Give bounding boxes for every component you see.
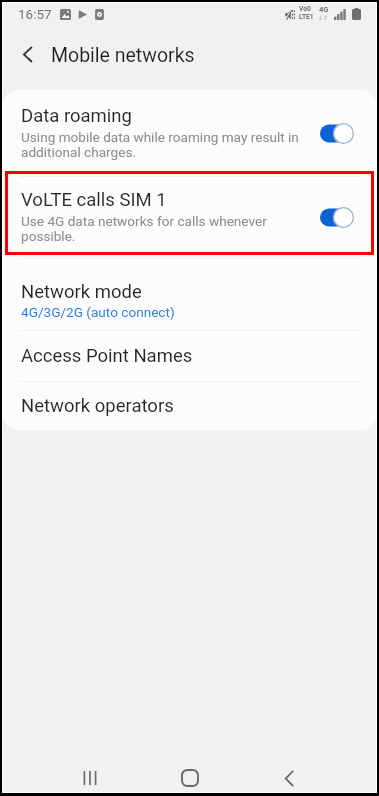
staticText: ↓↑ [318, 14, 329, 21]
staticText: Data roaming [21, 105, 132, 127]
staticText: 16:57 [18, 6, 52, 22]
button[interactable]: Toggle [320, 123, 354, 144]
staticText: Mobile networks [51, 44, 195, 67]
staticText: 4G/3G/2G (auto connect) [21, 304, 175, 320]
button[interactable]: Data roaming [3, 90, 376, 176]
button[interactable]: Access Point Names [3, 331, 376, 381]
button[interactable]: Home [3, 761, 376, 795]
staticText: Using mobile data while roaming may resu… [21, 129, 300, 160]
button[interactable]: VoLTE calls SIM 1 [3, 177, 376, 258]
staticText: LTE1 [299, 13, 314, 21]
button[interactable]: Back [259, 761, 319, 795]
button[interactable]: Network mode [3, 259, 376, 330]
staticText: Network operators [21, 395, 174, 417]
staticText: Vo0 [299, 5, 311, 13]
staticText: 4G [319, 5, 329, 14]
button[interactable]: Toggle [320, 207, 354, 228]
button[interactable]: Network operators [3, 382, 376, 430]
button[interactable]: Back [12, 39, 42, 69]
button[interactable]: Recent apps [60, 761, 120, 795]
staticText: VoLTE calls SIM 1 [21, 189, 167, 211]
staticText: Network mode [21, 281, 142, 303]
staticText: Use 4G data networks for calls whenever … [21, 213, 300, 244]
staticText: Access Point Names [21, 345, 193, 367]
